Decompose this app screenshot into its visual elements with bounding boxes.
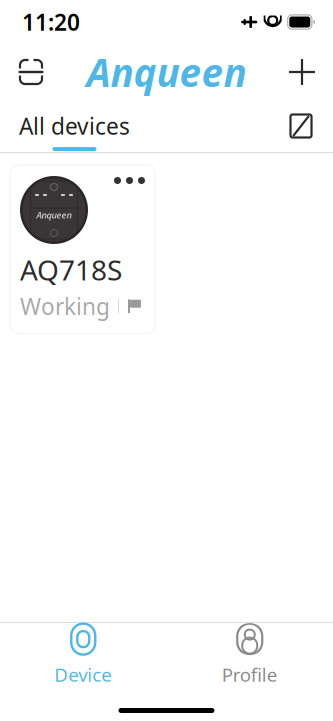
button[interactable]: Anqueen: [10, 165, 155, 333]
staticText: Profile: [222, 662, 278, 687]
button[interactable]: Add device: [279, 49, 325, 95]
button[interactable]: Edit devices: [279, 104, 323, 148]
staticText: Working: [20, 291, 110, 321]
staticText: Device: [54, 662, 112, 687]
button[interactable]: Profile: [166, 615, 333, 695]
staticText: Anqueen: [86, 46, 246, 98]
staticText: All devices: [19, 111, 130, 141]
button[interactable]: More options: [104, 165, 155, 196]
staticText: Anqueen: [36, 209, 71, 221]
staticText: AQ718S: [20, 251, 122, 288]
button[interactable]: Device: [0, 615, 166, 695]
staticText: 11:20: [22, 7, 80, 37]
button[interactable]: Scan QR code: [8, 49, 54, 95]
button[interactable]: All devices: [15, 101, 134, 151]
